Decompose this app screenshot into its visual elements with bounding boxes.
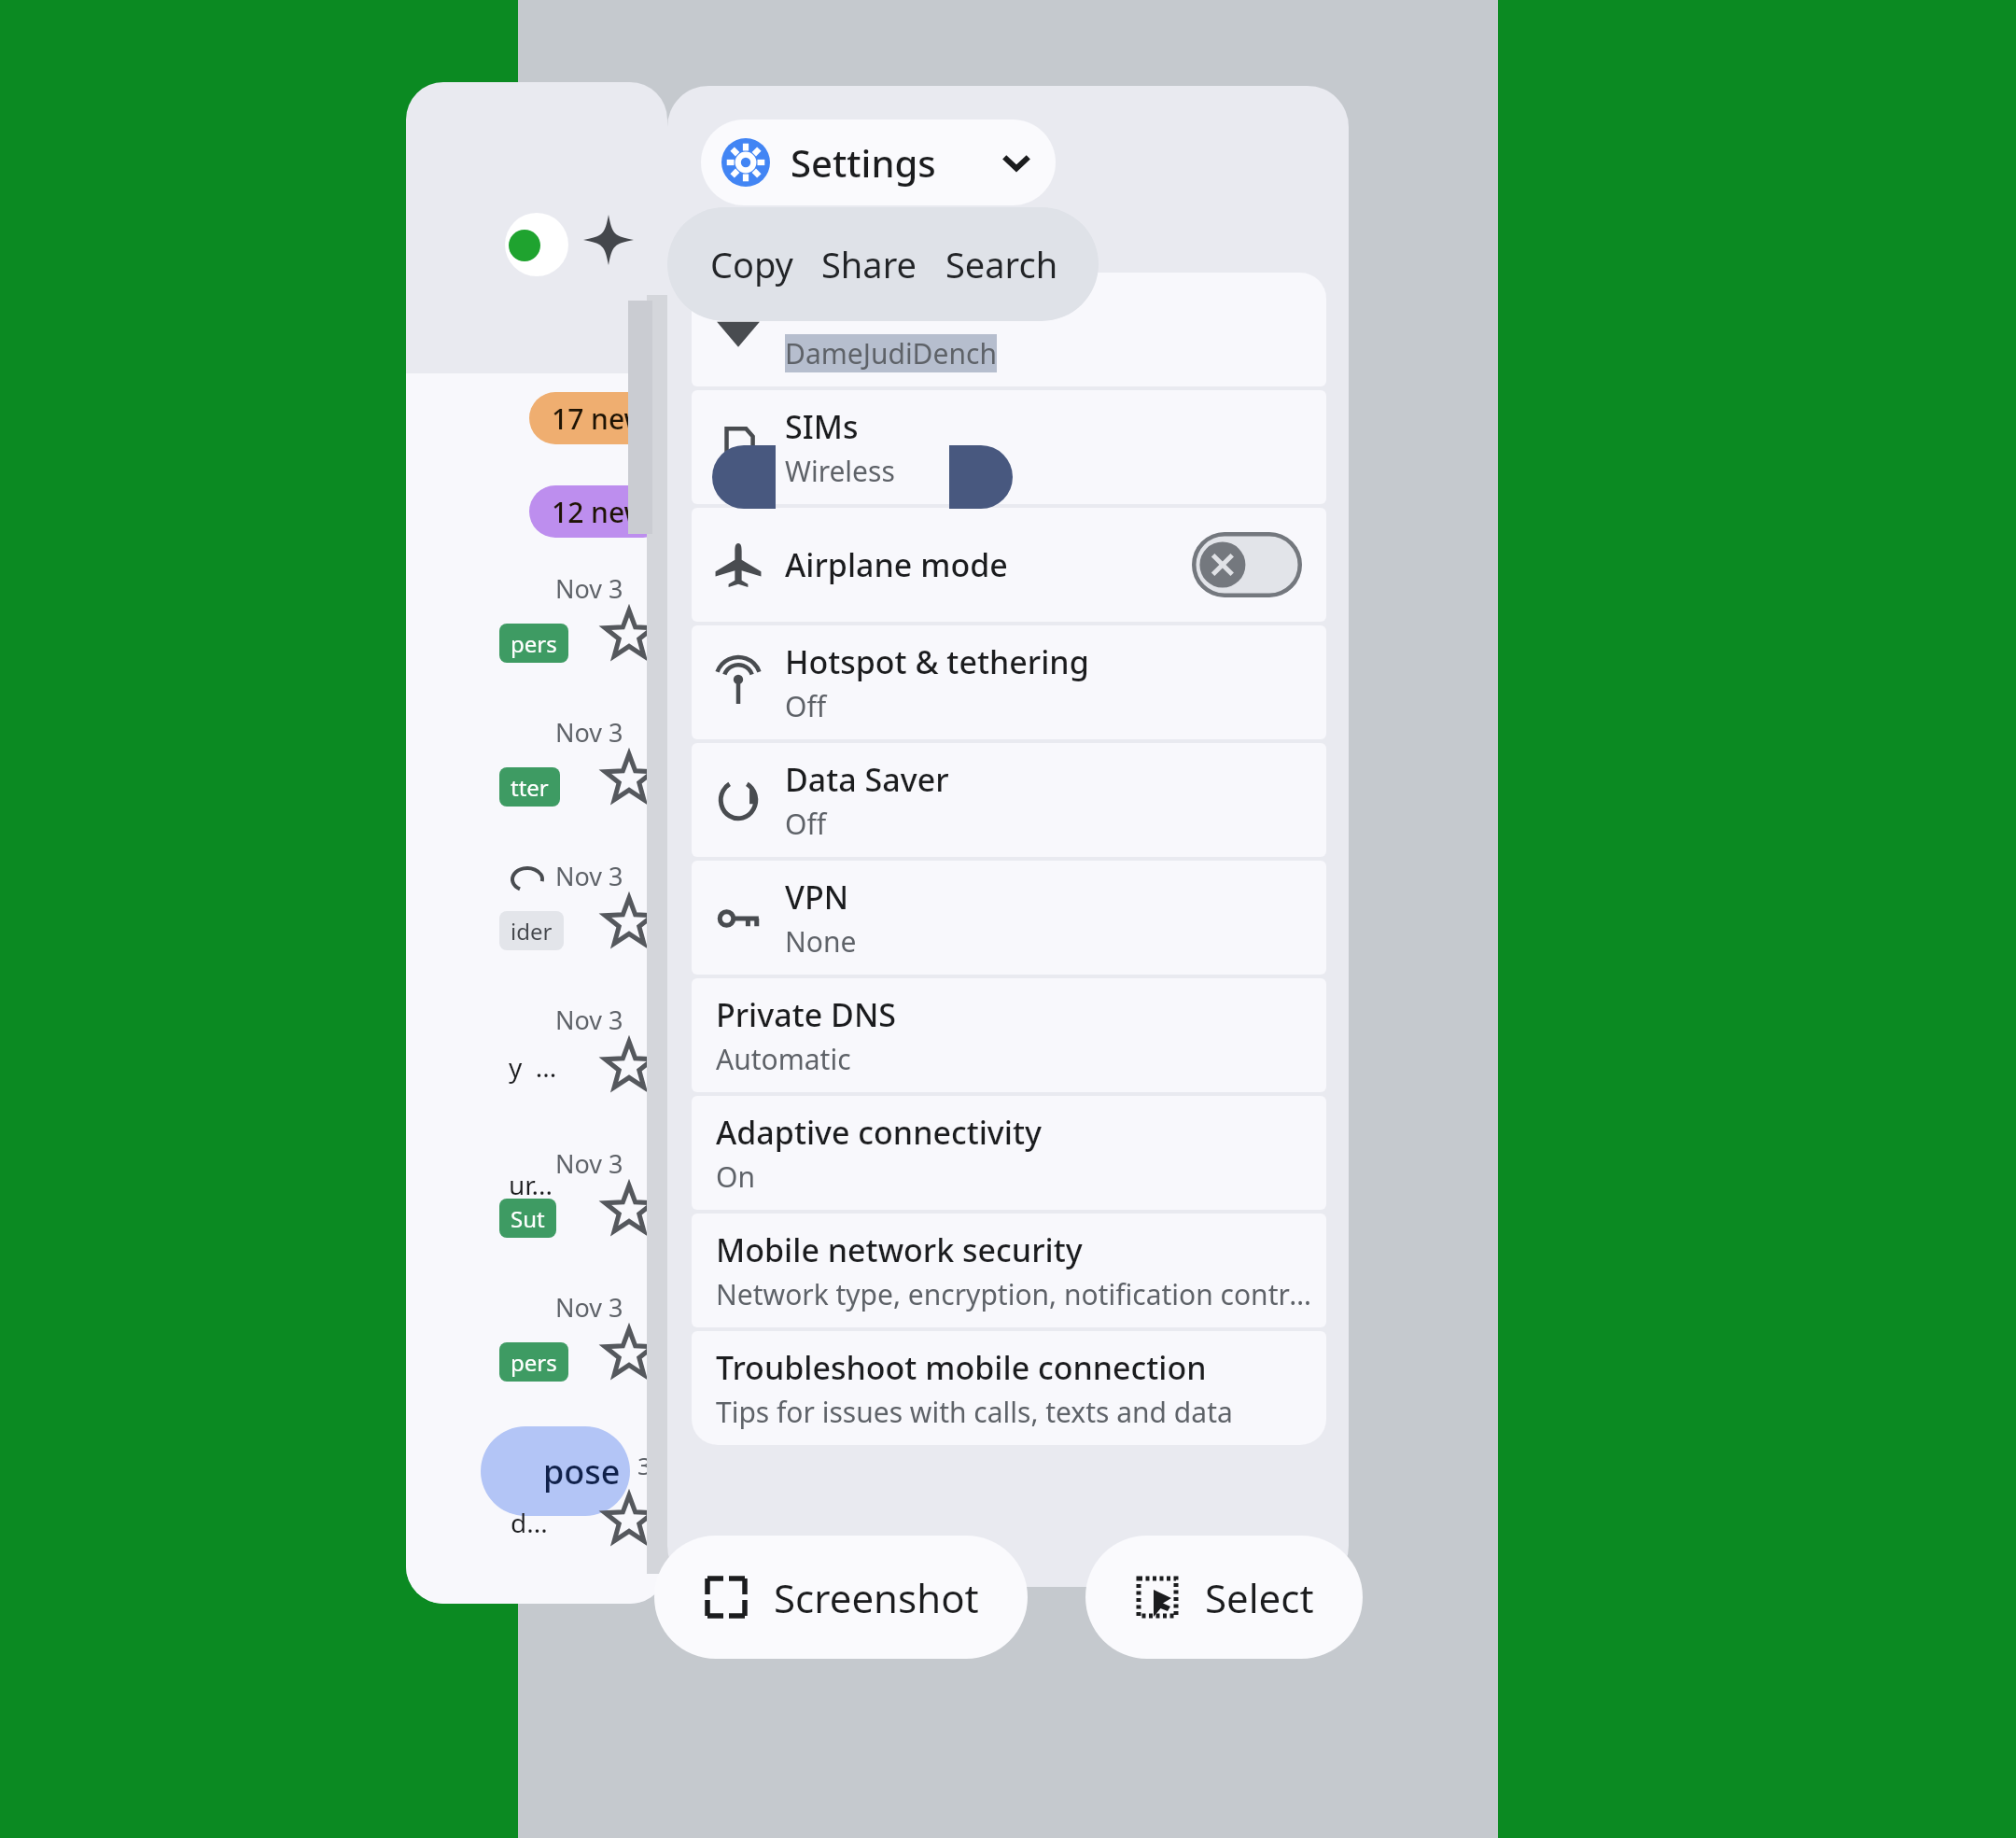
staticText: Off <box>785 805 827 843</box>
staticText: Nov 3 <box>555 715 623 750</box>
staticText: Hotspot & tethering <box>785 640 1089 683</box>
button[interactable]: pose <box>481 1426 630 1516</box>
staticText: Screenshot <box>774 1571 979 1624</box>
staticText: Adaptive connectivity <box>716 1111 1042 1154</box>
button[interactable]: Share <box>793 207 917 321</box>
other: Settings app <box>721 138 770 187</box>
staticText: ider <box>511 916 553 947</box>
staticText: Automatic <box>716 1040 851 1078</box>
button[interactable]: Mobile network security <box>692 1214 1326 1327</box>
button[interactable]: Airplane mode <box>692 508 1326 622</box>
staticText: Share <box>821 240 917 288</box>
staticText: pers <box>511 1347 557 1378</box>
staticText: On <box>716 1158 755 1196</box>
staticText: Copy <box>710 240 793 288</box>
button[interactable]: Private DNS <box>692 978 1326 1092</box>
button[interactable]: VPN <box>692 861 1326 975</box>
staticText: SIMs <box>785 405 859 448</box>
staticText: Nov 3 <box>555 1146 623 1181</box>
staticText: 3 <box>637 1449 651 1481</box>
staticText: Nov 3 <box>555 1290 623 1325</box>
staticText: Airplane mode <box>785 543 1008 586</box>
staticText: Nov 3 <box>555 859 623 893</box>
staticText: Data Saver <box>785 758 949 801</box>
staticText: pose <box>543 1449 621 1494</box>
staticText: 17 new <box>552 400 647 438</box>
staticText: Nov 3 <box>555 1003 623 1037</box>
button[interactable]: SIMs <box>692 390 1326 504</box>
button[interactable]: Screenshot <box>654 1536 1028 1659</box>
staticText: Select <box>1205 1571 1314 1624</box>
staticText: pers <box>511 628 557 659</box>
staticText: y ... <box>509 1049 557 1085</box>
staticText: ur... <box>509 1167 553 1202</box>
staticText: Troubleshoot mobile connection <box>716 1346 1207 1389</box>
staticText: Settings <box>791 137 936 188</box>
button[interactable]: Select <box>1085 1536 1363 1659</box>
button[interactable]: Adaptive connectivity <box>692 1096 1326 1210</box>
button[interactable]: Search <box>917 207 1058 321</box>
staticText: Off <box>785 687 827 725</box>
staticText: None <box>785 922 857 961</box>
button[interactable]: Airplane mode off <box>1192 532 1302 597</box>
button[interactable]: Copy <box>667 207 793 321</box>
staticText: VPN <box>785 876 849 919</box>
staticText: Search <box>945 240 1058 288</box>
button[interactable]: Settings app <box>701 119 1056 205</box>
staticText: Mobile network security <box>716 1228 1083 1271</box>
staticText: DameJudiDench <box>785 334 997 372</box>
staticText: Nov 3 <box>555 571 623 606</box>
staticText: d... <box>511 1505 548 1540</box>
staticText: Tips for issues with calls, texts and da… <box>716 1393 1233 1431</box>
staticText: 12 new <box>552 493 647 531</box>
button[interactable]: Troubleshoot mobile connection <box>692 1331 1326 1445</box>
button[interactable]: Internet <box>692 273 1326 386</box>
button[interactable]: Data Saver <box>692 743 1326 857</box>
button[interactable]: Hotspot & tethering <box>692 625 1326 739</box>
staticText: Internet <box>785 288 911 330</box>
staticText: Network type, encryption, notification c… <box>716 1275 1326 1313</box>
staticText: Sut <box>511 1203 545 1234</box>
staticText: tter <box>511 772 549 803</box>
staticText: Private DNS <box>716 993 896 1036</box>
staticText: Wireless <box>785 452 895 490</box>
